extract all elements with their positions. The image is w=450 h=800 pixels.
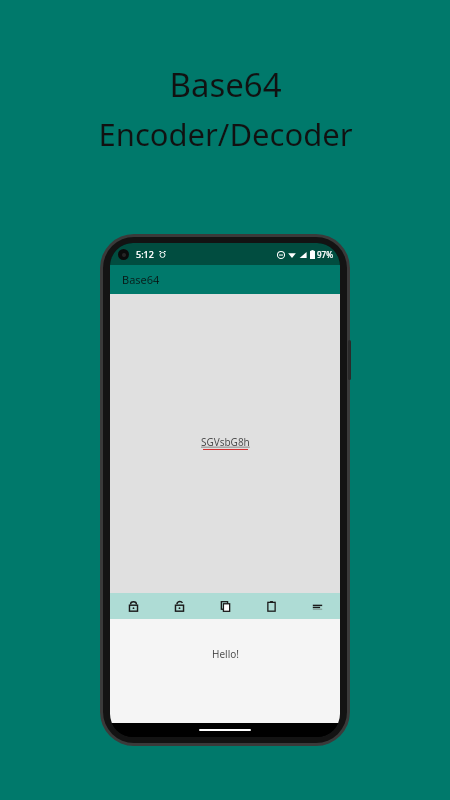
staticText: Encoder/Decoder: [98, 113, 353, 155]
button[interactable]: Decode: [156, 593, 202, 619]
button[interactable]: SGVsbG8h: [110, 294, 340, 593]
staticText: Hello!: [212, 647, 239, 661]
button[interactable]: Paste: [248, 593, 294, 619]
button[interactable]: Clear: [294, 593, 340, 619]
staticText: Base64: [169, 62, 282, 107]
button[interactable]: Base64: [110, 265, 340, 294]
staticText: 97%: [317, 249, 333, 260]
button[interactable]: Hello!: [110, 619, 340, 723]
staticText: Base64: [122, 272, 160, 287]
staticText: SGVsbG8h: [201, 435, 250, 449]
staticText: 5:12: [136, 248, 154, 260]
button[interactable]: Encode: [110, 593, 156, 619]
button[interactable]: Copy: [202, 593, 248, 619]
